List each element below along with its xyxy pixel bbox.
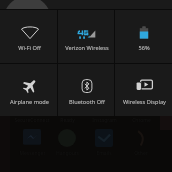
- button[interactable]: Airplane mode: [0, 64, 57, 116]
- button[interactable]: Wireless Display: [115, 64, 171, 116]
- button[interactable]: 56%: [115, 10, 171, 63]
- staticText: Bluetooth Off: [69, 98, 105, 106]
- staticText: Wi-Fi Off: [18, 44, 41, 52]
- staticText: 56%: [138, 44, 150, 52]
- button[interactable]: Verizon Wireless: [58, 10, 114, 63]
- button[interactable]: Ready: [48, 117, 86, 157]
- staticText: Airplane mode: [10, 98, 49, 106]
- button[interactable]: Wi-Fi Off: [0, 10, 57, 63]
- staticText: Wireless Display: [123, 98, 166, 106]
- staticText: Verizon Wireless: [65, 44, 109, 52]
- button[interactable]: SecureConnect: [13, 117, 51, 157]
- button[interactable]: Bluetooth Off: [58, 64, 114, 116]
- button[interactable]: Instagram: [85, 117, 123, 157]
